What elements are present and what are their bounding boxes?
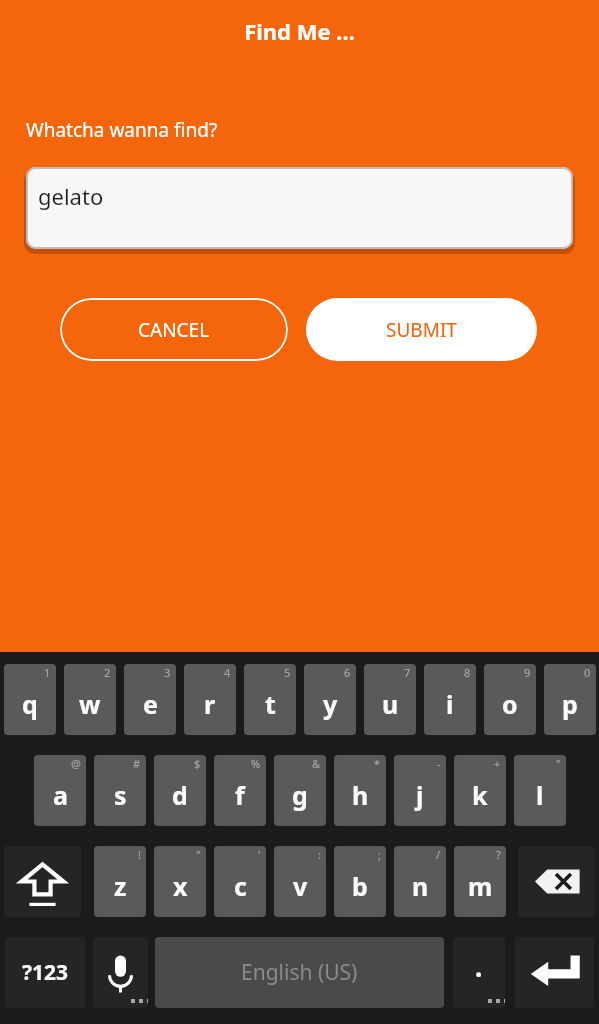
button[interactable]: 2 xyxy=(64,664,116,735)
staticText: . xyxy=(475,949,483,984)
staticText: - xyxy=(437,756,441,771)
button[interactable]: 3 xyxy=(124,664,176,735)
staticText: k xyxy=(472,778,488,812)
staticText: ; xyxy=(378,847,381,862)
staticText: ! xyxy=(138,847,141,862)
staticText: v xyxy=(293,869,308,903)
staticText: " xyxy=(196,847,201,862)
staticText: p xyxy=(562,687,578,721)
staticText: s xyxy=(114,778,127,812)
button[interactable]: " xyxy=(154,846,206,917)
button[interactable]: / xyxy=(394,846,446,917)
button[interactable]: 1 xyxy=(4,664,56,735)
staticText: ? xyxy=(496,847,501,862)
staticText: 8 xyxy=(464,665,471,680)
staticText: " xyxy=(556,756,561,771)
staticText: a xyxy=(53,778,68,812)
button[interactable]: 6 xyxy=(304,664,356,735)
button[interactable]: - xyxy=(394,755,446,826)
staticText: c xyxy=(234,869,247,903)
button[interactable]: Backspace xyxy=(518,846,595,917)
staticText: ' xyxy=(258,847,261,862)
button[interactable]: Voice input xyxy=(93,937,148,1008)
staticText: SUBMIT xyxy=(386,317,457,343)
button[interactable]: 7 xyxy=(364,664,416,735)
staticText: 1 xyxy=(44,665,51,680)
staticText: g xyxy=(292,778,308,812)
button[interactable]: + xyxy=(454,755,506,826)
staticText: l xyxy=(536,778,544,812)
button[interactable]: 0 xyxy=(544,664,596,735)
staticText: CANCEL xyxy=(138,317,210,343)
staticText: f xyxy=(235,778,245,812)
button[interactable]: ? xyxy=(454,846,506,917)
staticText: : xyxy=(318,847,321,862)
staticText: 6 xyxy=(344,665,351,680)
button[interactable]: * xyxy=(334,755,386,826)
staticText: y xyxy=(323,687,338,721)
staticText: w xyxy=(79,687,101,721)
staticText: z xyxy=(114,869,127,903)
button[interactable]: @ xyxy=(34,755,86,826)
button[interactable]: English (US) xyxy=(155,937,444,1008)
staticText: Find Me ... xyxy=(0,16,599,46)
staticText: u xyxy=(382,687,399,721)
staticText: English (US) xyxy=(241,958,358,987)
staticText: 0 xyxy=(584,665,591,680)
staticText: q xyxy=(22,687,38,721)
staticText: b xyxy=(352,869,368,903)
staticText: ?123 xyxy=(22,958,69,987)
staticText: * xyxy=(374,756,381,771)
staticText: gelato xyxy=(38,181,104,211)
button[interactable]: gelato xyxy=(26,167,573,249)
button[interactable]: SUBMIT xyxy=(306,298,537,361)
button[interactable]: ; xyxy=(334,846,386,917)
staticText: % xyxy=(251,756,261,771)
button[interactable]: & xyxy=(274,755,326,826)
staticText: # xyxy=(133,756,141,771)
button[interactable]: Symbols xyxy=(5,937,85,1008)
button[interactable]: 8 xyxy=(424,664,476,735)
staticText: $ xyxy=(194,756,201,771)
staticText: h xyxy=(352,778,369,812)
staticText: n xyxy=(412,869,429,903)
button[interactable]: 4 xyxy=(184,664,236,735)
button[interactable]: CANCEL xyxy=(60,298,288,361)
staticText: Whatcha wanna find? xyxy=(26,117,218,143)
button[interactable]: : xyxy=(274,846,326,917)
staticText: / xyxy=(436,847,441,862)
button[interactable]: Period xyxy=(453,937,505,1008)
staticText: & xyxy=(312,756,321,771)
button[interactable]: 5 xyxy=(244,664,296,735)
button[interactable]: " xyxy=(514,755,566,826)
staticText: r xyxy=(204,687,216,721)
staticText: t xyxy=(265,687,276,721)
staticText: 5 xyxy=(284,665,291,680)
staticText: j xyxy=(416,778,424,812)
button[interactable]: ! xyxy=(94,846,146,917)
staticText: x xyxy=(173,869,188,903)
staticText: 4 xyxy=(224,665,231,680)
button[interactable]: Enter xyxy=(515,937,594,1008)
staticText: m xyxy=(468,869,493,903)
staticText: 2 xyxy=(104,665,111,680)
staticText: o xyxy=(502,687,518,721)
button[interactable]: Shift xyxy=(4,846,81,917)
staticText: e xyxy=(143,687,158,721)
button[interactable]: ' xyxy=(214,846,266,917)
staticText: + xyxy=(494,756,501,771)
button[interactable]: # xyxy=(94,755,146,826)
staticText: 3 xyxy=(164,665,171,680)
staticText: i xyxy=(446,687,454,721)
staticText: @ xyxy=(71,756,81,771)
button[interactable]: % xyxy=(214,755,266,826)
staticText: d xyxy=(172,778,188,812)
button[interactable]: 9 xyxy=(484,664,536,735)
staticText: 9 xyxy=(524,665,531,680)
staticText: 7 xyxy=(404,665,411,680)
button[interactable]: $ xyxy=(154,755,206,826)
